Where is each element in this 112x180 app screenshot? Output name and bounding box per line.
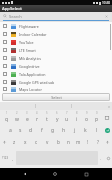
staticText: LTE Smart bbox=[19, 48, 36, 53]
other: Select Indoor Calendar bbox=[3, 32, 7, 36]
staticText: Tala Application bbox=[19, 72, 46, 77]
staticText: 7 bbox=[66, 111, 68, 115]
button[interactable]: Select Indoor Calendar bbox=[0, 30, 112, 38]
button[interactable]: Emoji bbox=[104, 148, 112, 168]
button[interactable]: 0 bbox=[92, 111, 102, 124]
staticText: ? bbox=[97, 139, 99, 145]
staticText: 6 bbox=[56, 111, 58, 115]
other: Select Mik Analytics bbox=[3, 56, 7, 60]
staticText: ?123 bbox=[2, 156, 9, 160]
staticText: Select bbox=[51, 95, 62, 100]
button[interactable]: j bbox=[69, 124, 80, 136]
button[interactable]: Select bbox=[2, 93, 110, 101]
staticText: . bbox=[100, 156, 102, 161]
staticText: Indoor Calendar bbox=[19, 32, 47, 37]
staticText: 8 bbox=[76, 111, 78, 115]
staticText: u bbox=[65, 116, 69, 123]
button[interactable]: 3 bbox=[22, 111, 32, 124]
button[interactable]: Settings bbox=[107, 105, 110, 108]
staticText: i bbox=[76, 116, 78, 123]
button[interactable]: h bbox=[58, 124, 69, 136]
staticText: o bbox=[85, 116, 89, 123]
button[interactable]: z bbox=[9, 136, 20, 148]
button[interactable]: , bbox=[10, 148, 16, 168]
staticText: , bbox=[12, 156, 14, 161]
staticText: 3 bbox=[26, 111, 28, 115]
staticText: w bbox=[15, 116, 19, 123]
button[interactable]: k bbox=[80, 124, 91, 136]
button[interactable]: Select LTE Smart bbox=[0, 46, 112, 54]
staticText: s bbox=[19, 127, 22, 134]
staticText: Googledrive bbox=[19, 64, 40, 69]
button[interactable]: 9 bbox=[82, 111, 92, 124]
button[interactable]: Search bbox=[0, 12, 112, 20]
button[interactable]: a bbox=[5, 124, 15, 136]
button[interactable]: 7 bbox=[62, 111, 72, 124]
staticText: YouTube bbox=[19, 40, 34, 45]
button[interactable]: ? bbox=[93, 136, 103, 148]
staticText: Maps Locator bbox=[19, 87, 42, 92]
staticText: 10:30 bbox=[102, 1, 111, 5]
button[interactable]: 6 bbox=[52, 111, 62, 124]
button[interactable]: Select Flightaware bbox=[0, 22, 112, 30]
staticText: x bbox=[24, 139, 27, 145]
staticText: a bbox=[9, 127, 12, 134]
button[interactable]: 8 bbox=[72, 111, 82, 124]
staticText: 0 bbox=[96, 111, 98, 115]
button[interactable]: Select YouTube bbox=[0, 38, 112, 46]
other: Select Tala Application bbox=[3, 72, 7, 76]
button[interactable]: ! bbox=[83, 136, 93, 148]
button[interactable]: Shift bbox=[103, 136, 112, 148]
button[interactable]: s bbox=[15, 124, 25, 136]
button[interactable]: c bbox=[31, 136, 42, 148]
button[interactable]: Select Googledrive bbox=[0, 62, 112, 70]
other: Select Maps Locator bbox=[3, 87, 7, 91]
button[interactable]: 2 bbox=[12, 111, 22, 124]
staticText: Flightaware bbox=[19, 24, 39, 29]
button[interactable]: ?123 bbox=[0, 148, 10, 168]
staticText: 1 bbox=[6, 111, 8, 115]
button[interactable]: Select Maps Locator bbox=[0, 86, 112, 92]
staticText: 9 bbox=[86, 111, 88, 115]
staticText: y bbox=[56, 116, 59, 123]
staticText: 4 bbox=[36, 111, 38, 115]
staticText: g bbox=[51, 127, 55, 134]
button[interactable]: 4 bbox=[32, 111, 42, 124]
button[interactable]: l bbox=[91, 124, 102, 136]
staticText: ! bbox=[87, 139, 89, 145]
other: Select Google GPS wizd.sab bbox=[3, 80, 7, 84]
button[interactable]: 5 bbox=[42, 111, 52, 124]
button[interactable]: m bbox=[73, 136, 83, 148]
button[interactable]: Enter bbox=[102, 124, 112, 136]
button[interactable]: d bbox=[25, 124, 36, 136]
button[interactable]: b bbox=[53, 136, 63, 148]
button[interactable]: g bbox=[47, 124, 58, 136]
other: Select Flightaware bbox=[3, 24, 7, 28]
staticText: n bbox=[67, 139, 70, 145]
button[interactable]: Clear bbox=[104, 14, 109, 19]
button[interactable]: Backspace bbox=[102, 111, 111, 124]
button[interactable]: Home bbox=[50, 169, 60, 179]
staticText: h bbox=[62, 127, 66, 134]
button[interactable]: x bbox=[20, 136, 31, 148]
button[interactable]: Select Mik Analytics bbox=[0, 54, 112, 62]
staticText: d bbox=[29, 127, 33, 134]
other: Select YouTube bbox=[3, 40, 7, 44]
button[interactable]: Shift bbox=[0, 136, 9, 148]
staticText: Search bbox=[9, 14, 22, 19]
button[interactable]: Back bbox=[20, 169, 30, 179]
staticText: AppSelect bbox=[2, 6, 22, 12]
button[interactable]: 1 bbox=[1, 111, 12, 124]
button[interactable]: Select Tala Application bbox=[0, 70, 112, 78]
button[interactable]: Select Google GPS wizd.sab bbox=[0, 78, 112, 86]
button[interactable]: Recents bbox=[81, 169, 91, 179]
button[interactable]: n bbox=[63, 136, 73, 148]
staticText: z bbox=[13, 139, 16, 145]
staticText: c bbox=[35, 139, 38, 145]
button[interactable]: f bbox=[36, 124, 47, 136]
staticText: t bbox=[46, 116, 48, 123]
staticText: q bbox=[5, 116, 9, 123]
button[interactable]: v bbox=[42, 136, 53, 148]
